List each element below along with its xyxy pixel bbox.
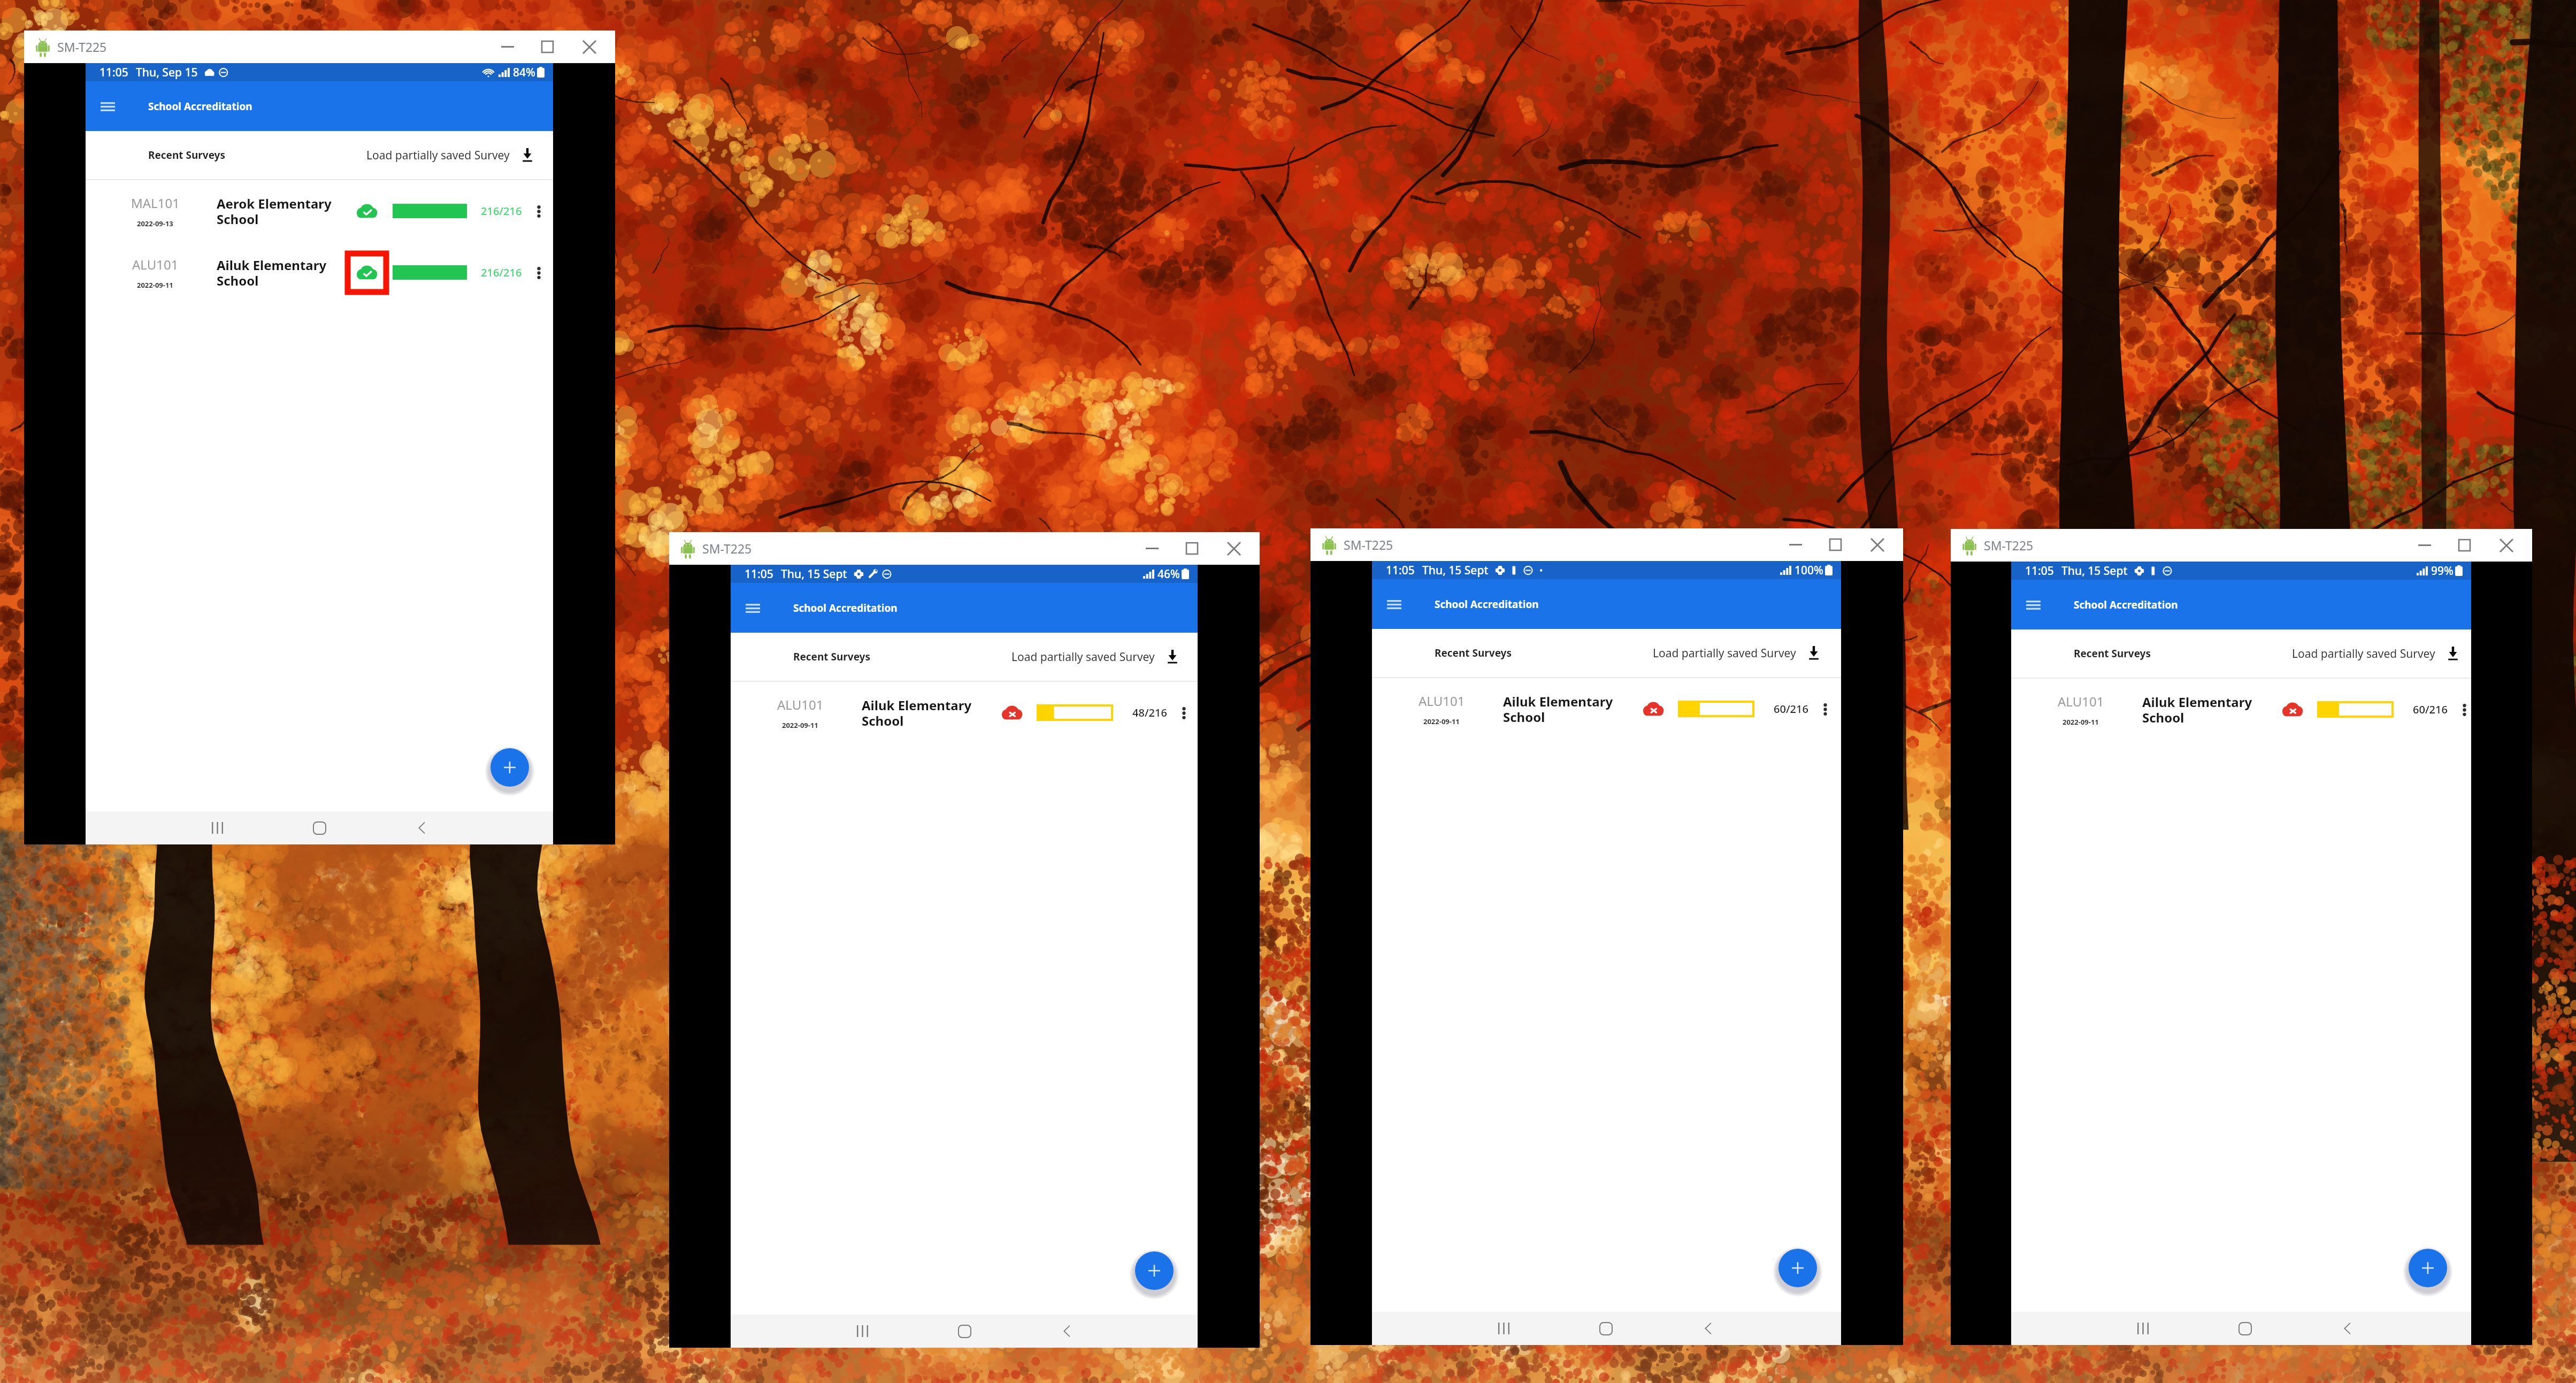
staticText: School Accreditation <box>2074 598 2178 612</box>
button[interactable]: Load partially saved Survey <box>1653 638 1821 668</box>
button[interactable]: Back <box>1692 1317 1724 1340</box>
staticText: 84% <box>513 65 535 80</box>
staticText: ALU101 <box>132 256 179 273</box>
staticText: 11:05 <box>745 566 773 582</box>
staticText: 48/216 <box>1132 705 1167 720</box>
button[interactable]: More options <box>1817 697 1833 721</box>
staticText: 100% <box>1795 563 1823 578</box>
staticText: 2022-09-13 <box>137 219 173 228</box>
staticText: Thu, Sep 15 <box>136 65 198 80</box>
button[interactable]: Recent apps <box>201 816 233 840</box>
button[interactable]: Close <box>1212 532 1256 565</box>
staticText: SM-T225 <box>57 39 107 55</box>
button[interactable]: More options <box>531 199 547 223</box>
button[interactable]: Maximize <box>1172 532 1212 565</box>
staticText: Load partially saved Survey <box>2292 646 2435 662</box>
staticText: 2022-09-11 <box>137 280 173 290</box>
staticText: Thu, 15 Sept <box>2061 563 2128 579</box>
staticText: 2022-09-11 <box>1423 717 1460 726</box>
button[interactable]: ALU101 <box>86 242 553 303</box>
button[interactable]: Close <box>2484 529 2529 562</box>
button[interactable]: Maximize <box>2444 529 2484 562</box>
staticText: 2022-09-11 <box>782 720 818 730</box>
button[interactable]: Recent apps <box>2127 1317 2159 1340</box>
button[interactable]: Open navigation menu <box>93 92 122 121</box>
button[interactable]: Back <box>2331 1317 2363 1340</box>
button[interactable]: Home <box>303 816 335 840</box>
button[interactable]: Open navigation menu <box>738 594 767 623</box>
staticText: Load partially saved Survey <box>1011 649 1155 665</box>
button[interactable]: Add new survey <box>490 748 529 787</box>
button[interactable]: Minimize <box>1132 532 1172 565</box>
staticText: ALU101 <box>2058 693 2104 710</box>
button[interactable]: Home <box>948 1319 980 1343</box>
button[interactable]: Back <box>1051 1319 1083 1343</box>
button[interactable]: Load partially saved Survey <box>1011 642 1180 672</box>
button[interactable]: Maximize <box>1815 528 1855 561</box>
staticText: Load partially saved Survey <box>1653 646 1796 661</box>
button[interactable]: Minimize <box>2405 529 2444 562</box>
staticText: School Accreditation <box>793 601 898 615</box>
staticText: 11:05 <box>99 65 128 80</box>
button[interactable]: Open navigation menu <box>1379 590 1408 619</box>
staticText: Recent Surveys <box>793 650 871 664</box>
staticText: 99% <box>2431 563 2454 579</box>
staticText: Ailuk Elementary School <box>862 696 982 729</box>
staticText: Recent Surveys <box>2074 647 2151 660</box>
button[interactable]: Load partially saved Survey <box>366 140 535 170</box>
button[interactable]: Back <box>405 816 438 840</box>
button[interactable]: ALU101 <box>1372 678 1841 740</box>
button[interactable]: ALU101 <box>2011 679 2471 740</box>
staticText: 46% <box>1157 566 1180 582</box>
staticText: Aerok Elementary School <box>217 195 337 228</box>
staticText: ALU101 <box>777 696 824 713</box>
staticText: School Accreditation <box>148 99 252 113</box>
staticText: Ailuk Elementary School <box>1503 693 1623 726</box>
button[interactable]: Home <box>1590 1317 1622 1340</box>
staticText: Load partially saved Survey <box>366 148 510 163</box>
staticText: 2022-09-11 <box>2063 717 2099 727</box>
staticText: School Accreditation <box>1435 597 1539 611</box>
button[interactable]: Home <box>2229 1317 2261 1340</box>
staticText: 11:05 <box>1386 563 1415 578</box>
button[interactable]: MAL101 <box>86 180 553 242</box>
button[interactable]: Open navigation menu <box>2019 590 2048 619</box>
staticText: MAL101 <box>131 194 180 212</box>
staticText: Thu, 15 Sept <box>781 566 847 582</box>
staticText: Ailuk Elementary School <box>217 256 337 289</box>
button[interactable]: More options <box>1176 701 1192 725</box>
button[interactable]: Add new survey <box>1778 1249 1817 1287</box>
staticText: Recent Surveys <box>1435 646 1512 660</box>
staticText: ALU101 <box>1419 692 1465 710</box>
button[interactable]: Recent apps <box>846 1319 878 1343</box>
button[interactable]: Recent apps <box>1488 1317 1520 1340</box>
button[interactable]: Minimize <box>488 30 527 63</box>
button[interactable]: More options <box>2456 698 2472 721</box>
button[interactable]: Add new survey <box>1135 1251 1174 1290</box>
button[interactable]: Close <box>1855 528 1900 561</box>
staticText: SM-T225 <box>1984 537 2034 554</box>
button[interactable]: Minimize <box>1776 528 1815 561</box>
button[interactable]: Close <box>567 30 612 63</box>
button[interactable]: ALU101 <box>731 682 1198 743</box>
staticText: 11:05 <box>2025 563 2054 579</box>
button[interactable]: Add new survey <box>2409 1249 2447 1287</box>
staticText: 60/216 <box>1774 702 1808 716</box>
staticText: Thu, 15 Sept <box>1422 563 1489 578</box>
staticText: 216/216 <box>481 204 522 218</box>
staticText: 60/216 <box>2413 702 2448 717</box>
button[interactable]: Load partially saved Survey <box>2292 639 2460 669</box>
button[interactable]: Maximize <box>527 30 567 63</box>
staticText: Ailuk Elementary School <box>2142 693 2263 726</box>
button[interactable]: More options <box>531 261 547 285</box>
staticText: Recent Surveys <box>148 148 226 162</box>
staticText: 216/216 <box>481 265 522 280</box>
staticText: SM-T225 <box>1344 536 1393 553</box>
staticText: SM-T225 <box>702 540 752 557</box>
